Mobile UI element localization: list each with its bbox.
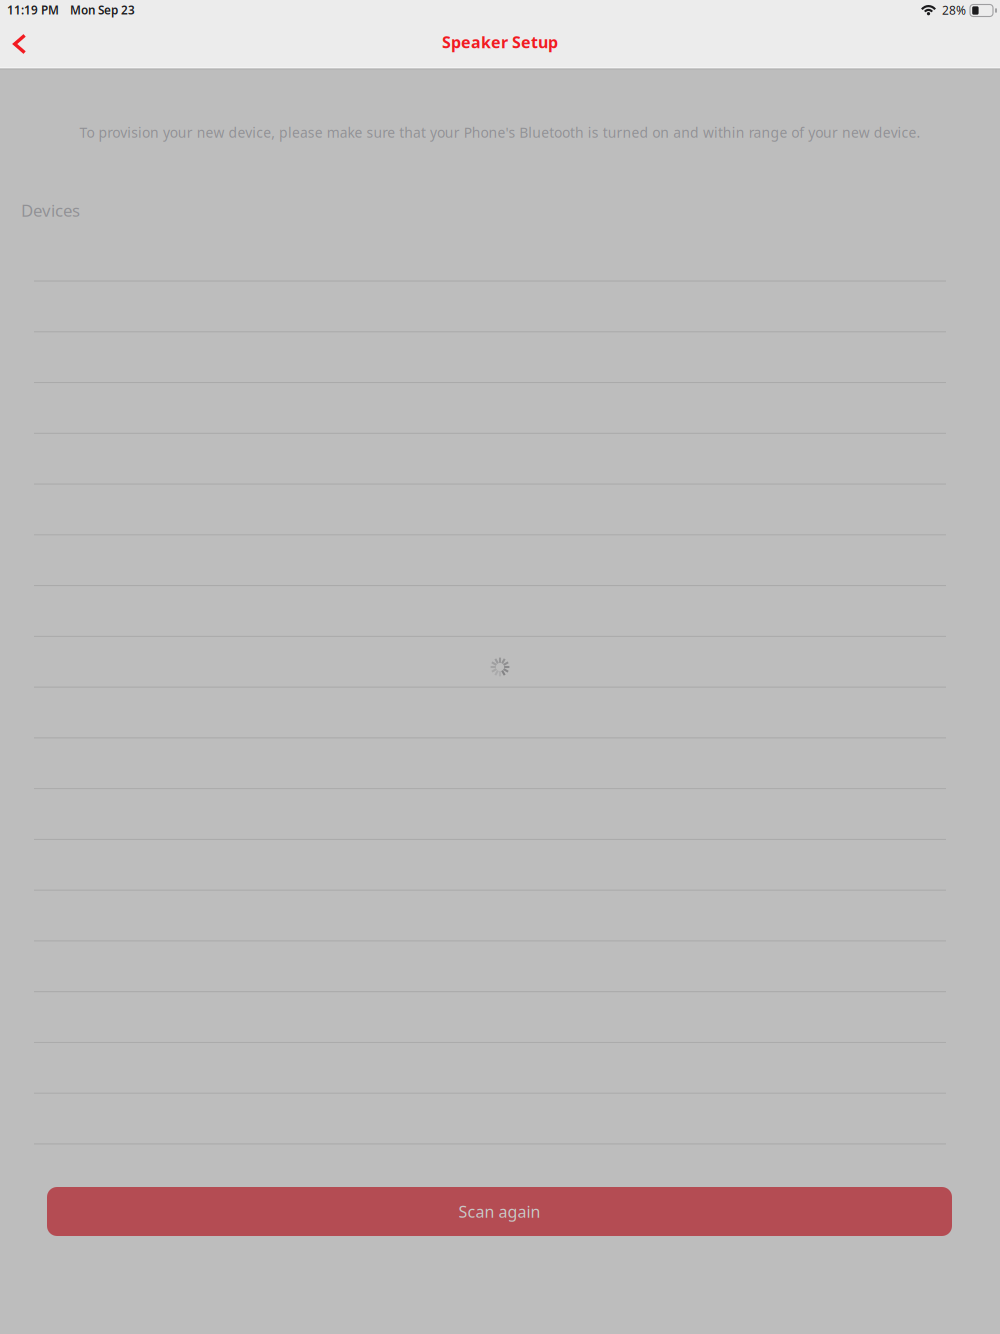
- staticText: To provision your new device, please mak…: [80, 123, 920, 142]
- staticText: Scan again: [458, 1201, 540, 1222]
- staticText: 11:19 PM: [7, 2, 59, 18]
- staticText: Speaker Setup: [442, 31, 558, 53]
- staticText: Mon Sep 23: [70, 2, 135, 18]
- staticText: Devices: [21, 199, 80, 222]
- staticText: 28%: [942, 2, 966, 18]
- button[interactable]: Back: [0, 22, 52, 67]
- button[interactable]: Scan again: [47, 1187, 952, 1236]
